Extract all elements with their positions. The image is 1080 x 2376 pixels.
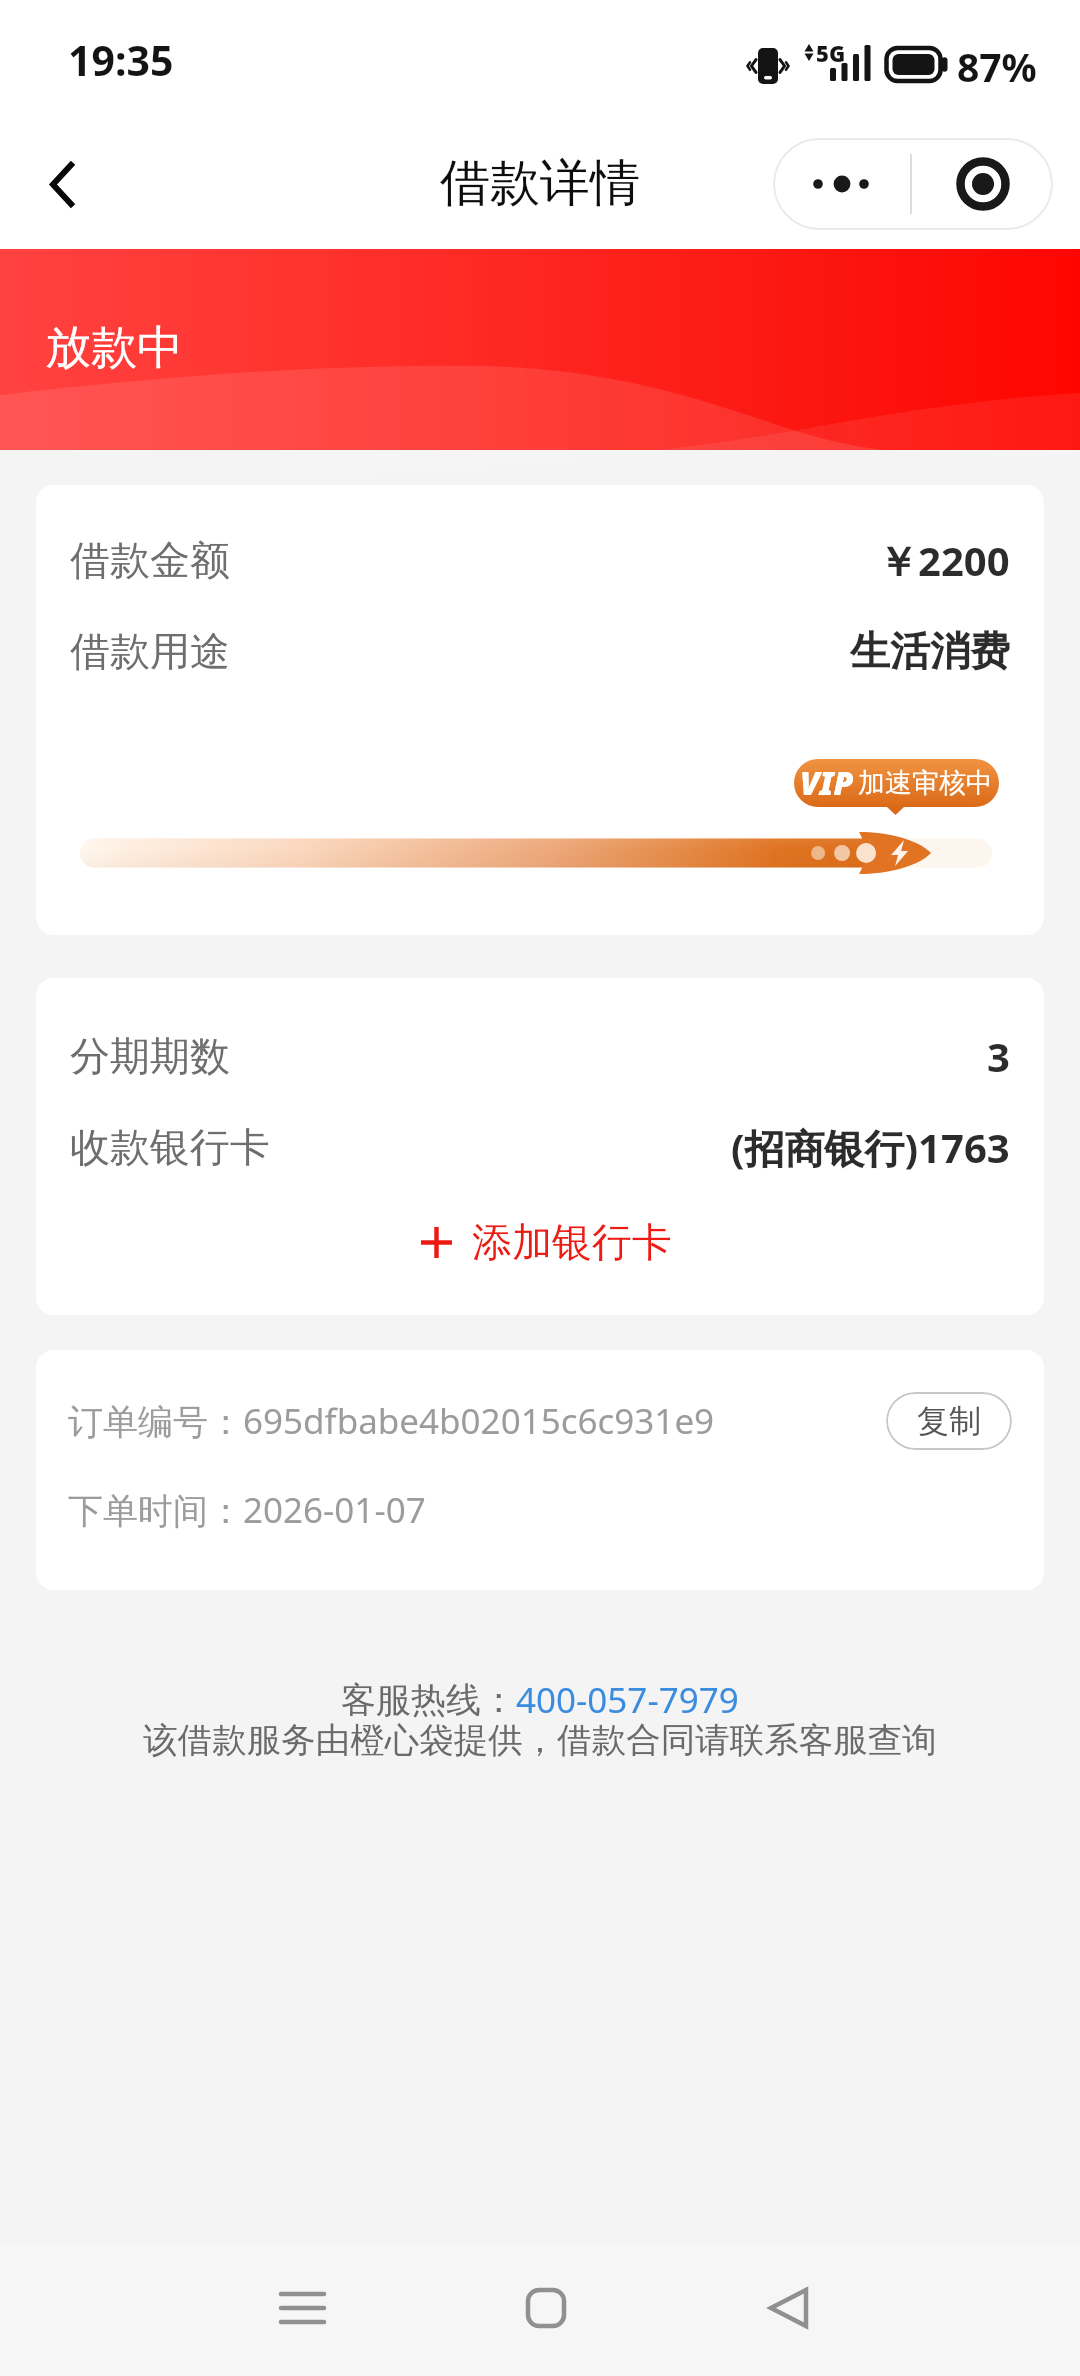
staticText: 借款用途	[70, 626, 230, 676]
staticText: ￥2200	[878, 533, 1010, 588]
staticText: 借款金额	[70, 535, 230, 585]
button[interactable]: 400-057-7979	[516, 1676, 739, 1724]
staticText: 借款详情	[440, 152, 640, 215]
staticText: 收款银行卡	[70, 1122, 270, 1172]
button[interactable]: 返回	[728, 2248, 848, 2368]
staticText: 生活消费	[850, 626, 1010, 676]
staticText: 19:35	[68, 32, 174, 88]
button[interactable]: 返回	[12, 129, 122, 239]
staticText: 分期期数	[70, 1031, 230, 1081]
staticText: 添加银行卡	[472, 1217, 672, 1267]
staticText: 客服热线：	[341, 1678, 516, 1722]
staticText: 放款中	[45, 319, 183, 377]
button[interactable]: 更多	[773, 138, 911, 230]
staticText: (招商银行)1763	[731, 1120, 1010, 1175]
button[interactable]: 添加银行卡	[411, 1212, 682, 1272]
staticText: 该借款服务由橙心袋提供，借款合同请联系客服查询	[143, 1719, 937, 1762]
button[interactable]: 最近任务	[242, 2248, 362, 2368]
button[interactable]: 复制	[886, 1392, 1012, 1450]
button[interactable]: 主屏幕	[486, 2248, 606, 2368]
button[interactable]: 关闭	[913, 138, 1053, 230]
staticText: 订单编号：695dfbabe4b02015c6c931e9	[68, 1397, 715, 1445]
staticText: 87%	[957, 40, 1037, 88]
staticText: VIP	[800, 761, 854, 805]
staticText: 3	[987, 1029, 1010, 1083]
staticText: 5G	[816, 38, 846, 68]
staticText: 下单时间：2026-01-07	[68, 1486, 426, 1534]
staticText: 加速审核中	[858, 766, 993, 800]
staticText: 复制	[917, 1401, 981, 1441]
